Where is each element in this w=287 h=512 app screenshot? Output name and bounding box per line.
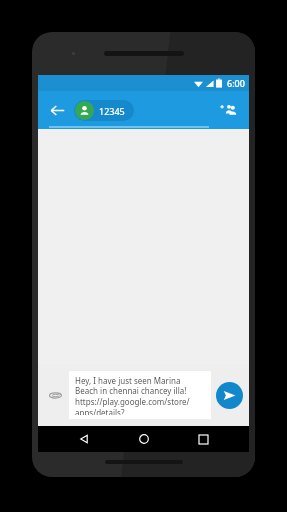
button[interactable]: Send bbox=[216, 382, 243, 409]
button[interactable]: 12345 bbox=[74, 100, 134, 121]
staticText: 12345 bbox=[99, 105, 125, 117]
button[interactable]: Back bbox=[44, 97, 70, 123]
staticText: 6:00 bbox=[227, 77, 245, 89]
staticText: Hey, I have just seen Marina Beach in ch… bbox=[75, 375, 205, 415]
button[interactable]: Recents bbox=[190, 426, 216, 452]
button[interactable]: Hey, I have just seen Marina Beach in ch… bbox=[69, 371, 211, 419]
button[interactable]: Home bbox=[131, 426, 157, 452]
button[interactable]: Add people bbox=[215, 97, 241, 123]
button[interactable]: Back bbox=[71, 426, 97, 452]
button[interactable]: Attach bbox=[44, 384, 66, 406]
